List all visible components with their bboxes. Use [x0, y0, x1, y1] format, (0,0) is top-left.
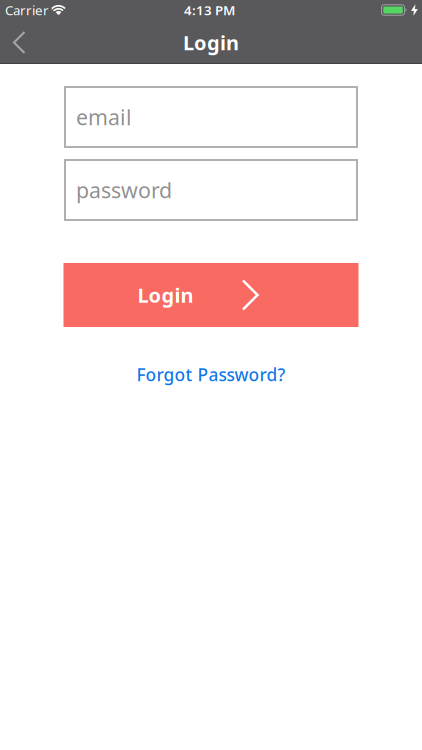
staticText: email: [76, 103, 132, 131]
button[interactable]: email: [64, 86, 358, 148]
staticText: 4:13 PM: [184, 1, 235, 19]
staticText: Login: [137, 282, 193, 308]
staticText: Forgot Password?: [136, 363, 285, 386]
button[interactable]: Forgot Password?: [136, 363, 285, 386]
staticText: password: [76, 176, 172, 204]
staticText: Carrier: [5, 1, 49, 19]
button[interactable]: Login: [63, 263, 358, 327]
button[interactable]: password: [64, 159, 358, 221]
button[interactable]: [0, 27, 36, 58]
staticText: Login: [183, 29, 239, 56]
